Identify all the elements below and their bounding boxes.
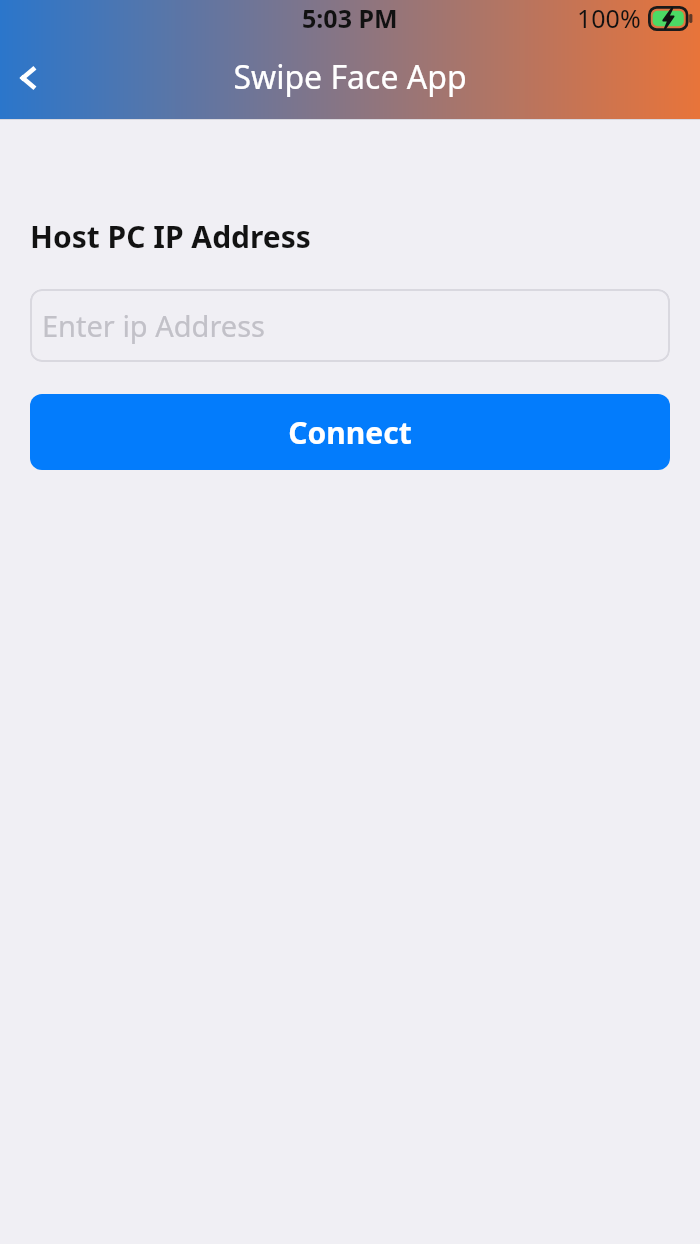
staticText: Swipe Face App bbox=[233, 55, 467, 99]
button[interactable]: Back bbox=[0, 50, 56, 106]
staticText: 5:03 PM bbox=[302, 1, 398, 35]
staticText: Connect bbox=[288, 412, 412, 453]
staticText: 100% bbox=[577, 1, 641, 35]
staticText: Enter ip Address bbox=[42, 306, 265, 345]
button[interactable]: Enter ip Address bbox=[30, 289, 670, 362]
staticText: Host PC IP Address bbox=[30, 216, 311, 257]
button[interactable]: Connect bbox=[30, 394, 670, 470]
